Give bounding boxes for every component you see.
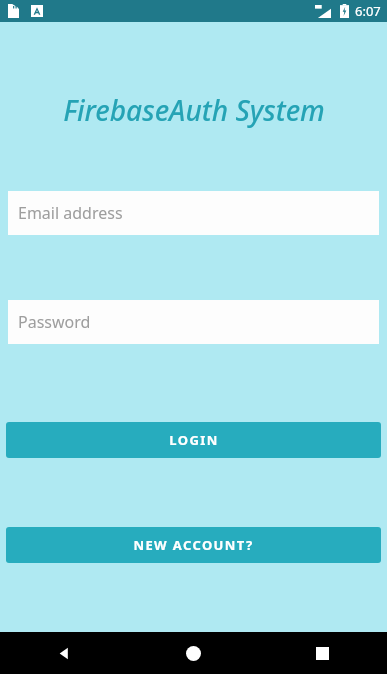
button[interactable]: Back bbox=[0, 632, 129, 674]
button[interactable]: NEW ACCOUNT? bbox=[6, 527, 381, 563]
staticText: NEW ACCOUNT? bbox=[133, 536, 254, 554]
button[interactable]: Recent apps bbox=[258, 632, 387, 674]
button[interactable]: LOGIN bbox=[6, 422, 381, 458]
button[interactable]: Home bbox=[129, 632, 258, 674]
staticText: Email address bbox=[18, 202, 123, 224]
staticText: FirebaseAuth System bbox=[63, 91, 325, 129]
staticText: Password bbox=[18, 311, 91, 333]
button[interactable]: Email address bbox=[8, 191, 379, 235]
button[interactable]: Password bbox=[8, 300, 379, 344]
staticText: 6:07 bbox=[355, 2, 381, 20]
staticText: LOGIN bbox=[169, 431, 219, 449]
